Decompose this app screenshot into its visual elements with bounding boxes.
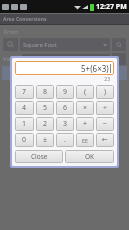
staticText: 8 — [43, 87, 48, 97]
button[interactable]: 5+(6×3) — [15, 61, 114, 75]
button[interactable]: 6 — [56, 101, 74, 115]
staticText: − — [103, 119, 108, 129]
staticText: Area Conversions — [3, 16, 47, 23]
button[interactable]: 9 — [56, 85, 74, 99]
button[interactable]: 4 — [15, 101, 34, 115]
staticText: 6 — [63, 103, 68, 113]
staticText: ← — [102, 136, 108, 144]
button[interactable]: 2 — [36, 117, 54, 131]
staticText: 5 — [43, 103, 48, 113]
button[interactable]: 5 — [36, 101, 54, 115]
staticText: + — [83, 119, 88, 129]
staticText: 7 — [22, 87, 27, 97]
staticText: . — [64, 135, 66, 145]
button[interactable]: ± — [36, 133, 54, 147]
staticText: From — [4, 28, 19, 36]
button[interactable]: 7 — [15, 85, 34, 99]
staticText: EE — [82, 137, 89, 144]
button[interactable]: + — [76, 117, 94, 131]
staticText: ± — [43, 135, 48, 145]
button[interactable]: ) — [96, 85, 114, 99]
staticText: ) — [104, 87, 107, 97]
staticText: ( — [84, 87, 87, 97]
staticText: ÷ — [103, 103, 108, 113]
staticText: 12:27 PM — [96, 2, 127, 12]
button[interactable]: OK — [65, 150, 114, 163]
staticText: 5+(6×3) — [81, 63, 109, 74]
button[interactable]: 3 — [56, 117, 74, 131]
staticText: 4 — [22, 103, 27, 113]
button[interactable]: 0 — [15, 133, 34, 147]
staticText: 1 — [22, 119, 27, 129]
staticText: 9 — [63, 87, 68, 97]
button[interactable]: . — [56, 133, 74, 147]
button[interactable]: × — [76, 101, 94, 115]
button[interactable]: EE — [76, 133, 94, 147]
button[interactable]: 8 — [36, 85, 54, 99]
button[interactable]: ( — [76, 85, 94, 99]
staticText: 23 — [15, 76, 110, 83]
button[interactable]: Close — [15, 150, 63, 163]
staticText: 3 — [63, 119, 68, 129]
button[interactable]: Backspace — [96, 133, 114, 147]
staticText: Close — [31, 152, 48, 161]
staticText: 2 — [43, 119, 48, 129]
button[interactable]: 1 — [15, 117, 34, 131]
staticText: Square Foot — [23, 41, 57, 49]
staticText: Value — [3, 55, 19, 63]
staticText: 0 — [22, 135, 27, 145]
button[interactable]: ÷ — [96, 101, 114, 115]
staticText: OK — [85, 152, 95, 161]
button[interactable]: − — [96, 117, 114, 131]
staticText: × — [83, 103, 88, 113]
